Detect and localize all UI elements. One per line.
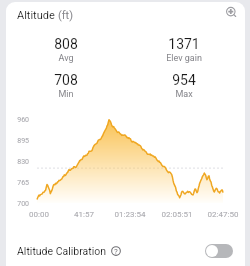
staticText: (ft) — [58, 9, 74, 22]
staticText: 830 — [6, 158, 29, 166]
staticText: 02:05:51 — [152, 210, 202, 219]
staticText: 708 — [54, 72, 78, 88]
staticText: 765 — [6, 179, 29, 187]
staticText: Altitude Calibration — [17, 245, 107, 257]
staticText: 02:47:50 — [198, 210, 245, 219]
staticText: 00:00 — [14, 210, 64, 219]
staticText: 808 — [54, 36, 78, 52]
staticText: 954 — [172, 72, 196, 88]
staticText: ? — [114, 247, 118, 256]
staticText: Altitude — [17, 9, 58, 22]
staticText: 895 — [6, 137, 29, 145]
staticText: 01:23:54 — [105, 210, 155, 219]
staticText: 41:57 — [59, 210, 109, 219]
staticText: Max — [175, 89, 193, 100]
staticText: 1371 — [168, 36, 200, 52]
button[interactable]: Help — [111, 246, 121, 256]
staticText: 700 — [6, 200, 29, 208]
button[interactable]: Altitude calibration toggle — [205, 244, 233, 258]
staticText: 960 — [6, 116, 29, 124]
staticText: Min — [58, 89, 74, 100]
staticText: Elev gain — [166, 53, 202, 64]
staticText: Avg — [58, 53, 74, 64]
button[interactable]: Zoom in — [219, 2, 243, 26]
button[interactable]: Altitude Calibration — [6, 237, 245, 265]
